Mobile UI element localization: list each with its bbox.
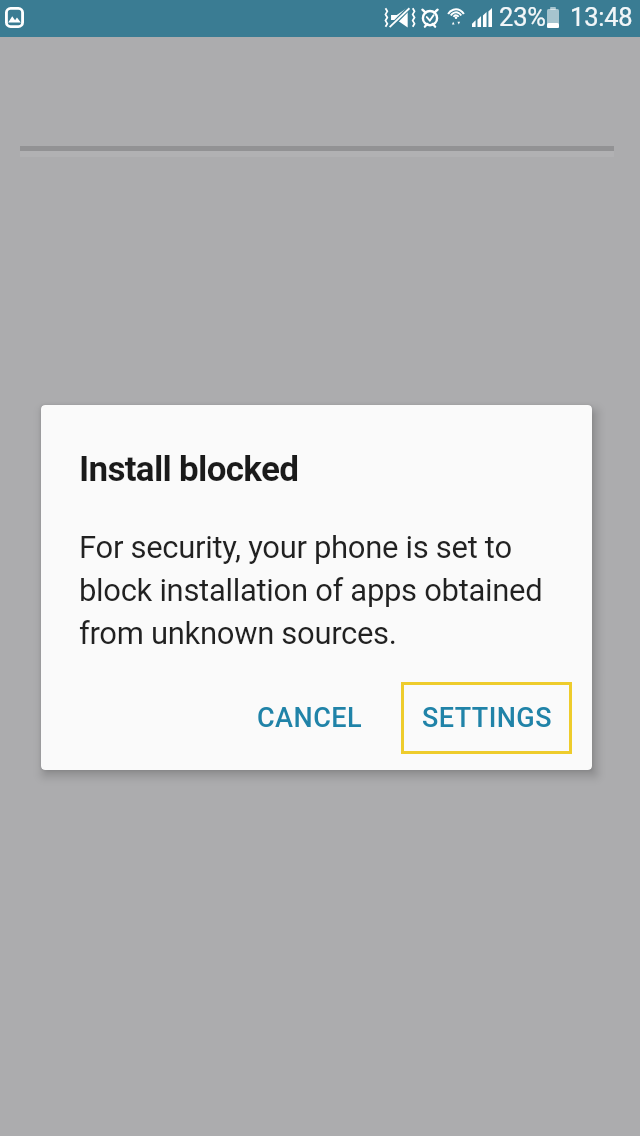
staticText: Install blocked [79,449,299,490]
other: Screenshot captured notification [5,7,24,28]
other: Wi-Fi connected [447,7,465,27]
other: Alarm set [420,7,440,28]
staticText: 23% [499,2,546,32]
staticText: For security, your phone is set to block… [79,529,557,652]
button[interactable]: CANCEL [234,682,385,754]
other: Battery 23 percent [547,7,559,28]
other: Mobile signal strength [472,7,492,27]
other: Sound off, vibrate [384,7,416,28]
staticText: SETTINGS [422,702,552,734]
staticText: CANCEL [257,702,362,734]
staticText: 13:48 [570,2,633,32]
button[interactable]: SETTINGS [401,682,572,754]
